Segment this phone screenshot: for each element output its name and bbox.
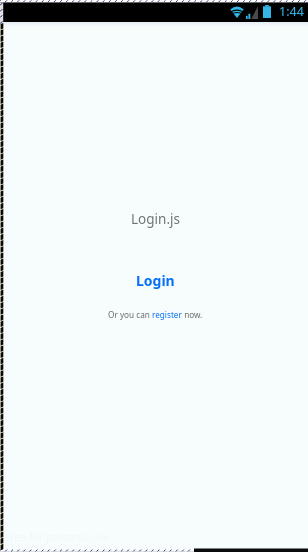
- staticText: Login.js: [131, 210, 180, 228]
- staticText: now.: [182, 309, 203, 320]
- button[interactable]: Login: [136, 271, 175, 290]
- staticText: register: [152, 309, 182, 320]
- button[interactable]: register: [152, 309, 182, 320]
- staticText: Login: [136, 271, 175, 290]
- staticText: 1:44: [279, 3, 304, 20]
- staticText: Or you can: [108, 309, 152, 320]
